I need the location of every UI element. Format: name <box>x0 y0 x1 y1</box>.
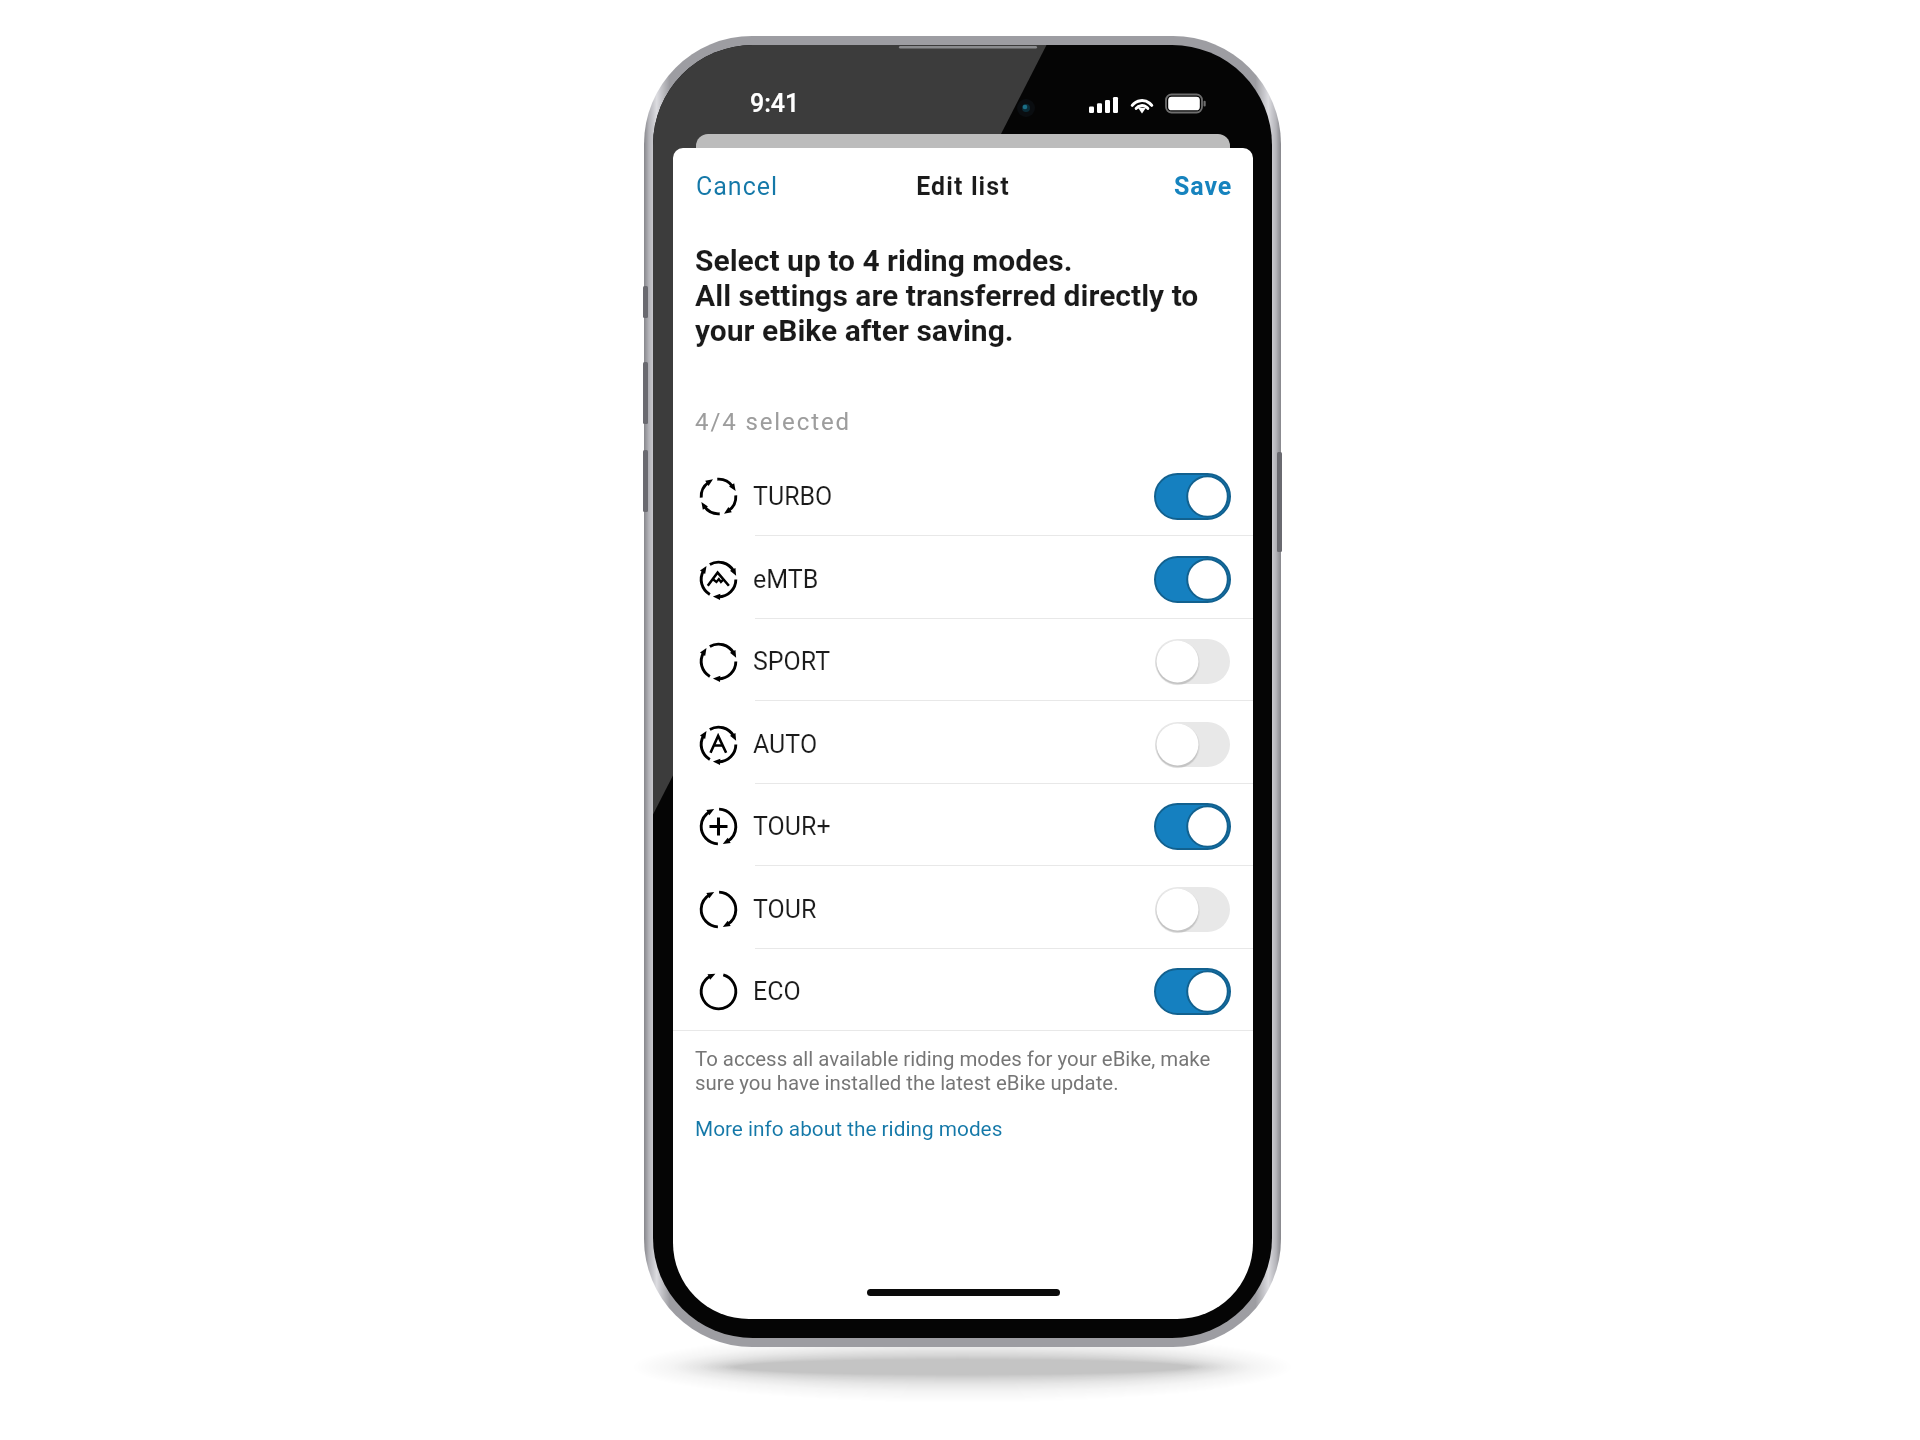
button[interactable]: More info about the riding modes <box>689 1111 1009 1147</box>
staticText: TOUR <box>753 895 817 924</box>
staticText: Save <box>1174 172 1233 201</box>
staticText: More info about the riding modes <box>695 1117 1003 1141</box>
button[interactable]: TURBO <box>673 455 1253 537</box>
staticText: 4/4 selected <box>695 408 851 436</box>
staticText: 9:41 <box>750 89 800 118</box>
button[interactable]: Off <box>1155 722 1230 767</box>
button[interactable]: ECO <box>673 950 1253 1032</box>
staticText: TOUR+ <box>753 812 831 841</box>
staticText: eMTB <box>753 565 819 594</box>
button[interactable]: AUTO <box>673 703 1253 785</box>
button[interactable]: Save <box>1168 164 1239 209</box>
button[interactable]: On <box>1155 969 1230 1014</box>
button[interactable]: Cancel <box>690 164 785 209</box>
staticText: Select up to 4 riding modes. All setting… <box>695 243 1199 348</box>
staticText: Edit list <box>673 172 1253 201</box>
staticText: SPORT <box>753 647 831 676</box>
button[interactable]: Off <box>1155 639 1230 684</box>
button[interactable]: eMTB <box>673 538 1253 620</box>
staticText: TURBO <box>753 482 833 511</box>
button[interactable]: TOUR+ <box>673 785 1253 867</box>
staticText: To access all available riding modes for… <box>695 1047 1211 1095</box>
button[interactable]: On <box>1155 804 1230 849</box>
button[interactable]: TOUR <box>673 868 1253 950</box>
staticText: ECO <box>753 977 801 1006</box>
button[interactable]: On <box>1155 557 1230 602</box>
staticText: Cancel <box>696 172 779 201</box>
staticText: AUTO <box>753 730 818 759</box>
button[interactable]: Off <box>1155 887 1230 932</box>
button[interactable]: On <box>1155 474 1230 519</box>
button[interactable]: SPORT <box>673 620 1253 702</box>
